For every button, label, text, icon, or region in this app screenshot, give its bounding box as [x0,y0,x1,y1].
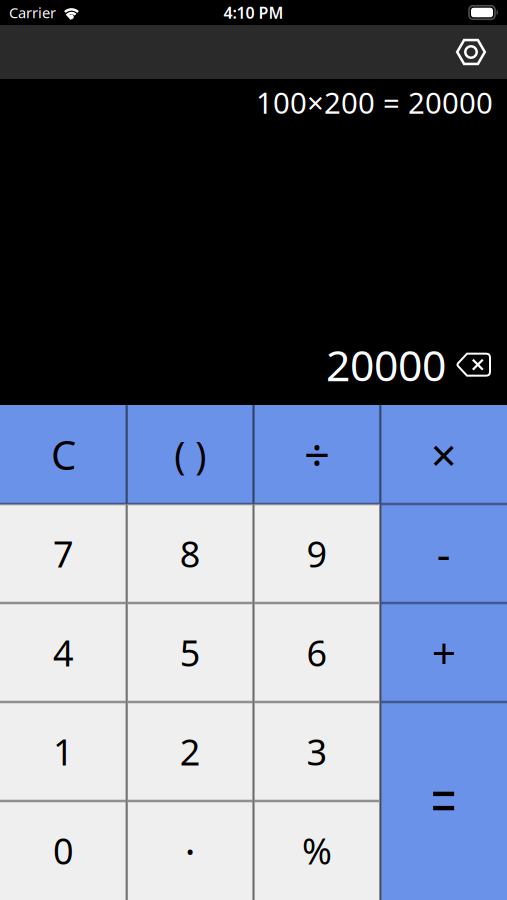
staticText: 4 [53,629,74,676]
staticText: 0 [53,827,74,874]
button[interactable]: + [380,603,507,702]
button[interactable]: 5 [127,603,254,702]
button[interactable]: × [380,405,507,504]
staticText: · [185,824,196,877]
staticText: 9 [306,530,327,577]
button[interactable]: ( ) [127,405,254,504]
button[interactable]: 3 [253,702,380,801]
staticText: 100×200 = 20000 [256,83,493,122]
staticText: 8 [180,530,201,577]
staticText: Carrier [9,3,56,22]
staticText: ( ) [174,430,206,479]
staticText: 3 [306,728,327,775]
button[interactable]: Settings [457,39,485,64]
staticText: 6 [306,629,327,676]
button[interactable]: Equals [380,702,507,900]
staticText: 7 [53,530,74,577]
staticText: × [431,424,457,485]
button[interactable]: 2 [127,702,254,801]
button[interactable]: 1 [0,702,127,801]
staticText: % [302,827,332,874]
staticText: - [437,525,451,582]
staticText: ÷ [304,424,330,485]
button[interactable]: · [127,801,254,900]
button[interactable]: - [380,504,507,603]
staticText: 4:10 PM [223,2,283,23]
button[interactable]: 9 [253,504,380,603]
button[interactable]: % [253,801,380,900]
button[interactable]: ÷ [253,405,380,504]
staticText: 5 [180,629,201,676]
staticText: + [432,624,456,681]
button[interactable]: 4 [0,603,127,702]
button[interactable]: 6 [253,603,380,702]
button[interactable]: C [0,405,127,504]
staticText: C [51,428,76,481]
button[interactable]: 8 [127,504,254,603]
staticText: 20000 [326,336,446,393]
button[interactable]: 7 [0,504,127,603]
button[interactable]: Delete [457,354,490,376]
staticText: 2 [180,728,201,775]
staticText: 1 [53,728,74,775]
button[interactable]: 0 [0,801,127,900]
